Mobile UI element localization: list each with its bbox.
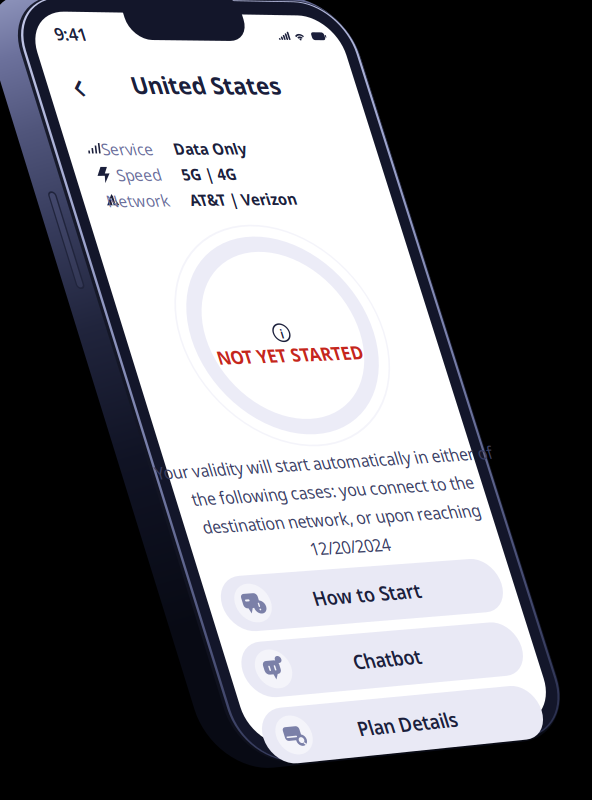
- staticText: Chatbot: [343, 644, 430, 674]
- staticText: Your validity will start automatically i…: [121, 442, 552, 469]
- staticText: 9:41: [51, 21, 90, 47]
- button[interactable]: How to Start: [0, 0, 592, 800]
- staticText: Plan Details: [343, 709, 471, 739]
- staticText: NOT YET STARTED: [197, 341, 383, 369]
- staticText: Data Only: [154, 136, 247, 161]
- button[interactable]: Chatbot: [0, 0, 592, 800]
- staticText: destination network, or upon reaching: [159, 507, 514, 534]
- button[interactable]: Back: [0, 0, 592, 800]
- staticText: i: [280, 324, 284, 343]
- staticText: AT&T | Verizon: [170, 187, 306, 211]
- staticText: United States: [111, 66, 299, 104]
- staticText: Network: [104, 188, 180, 213]
- staticText: 12/20/2024: [286, 540, 388, 567]
- staticText: 5G | 4G: [162, 161, 232, 186]
- staticText: ‹: [71, 54, 85, 114]
- staticText: the following cases: you connect to the: [157, 475, 517, 502]
- staticText: Speed: [118, 163, 172, 187]
- staticText: Service: [101, 137, 164, 161]
- button[interactable]: Plan Details: [0, 0, 592, 800]
- staticText: How to Start: [298, 579, 436, 609]
